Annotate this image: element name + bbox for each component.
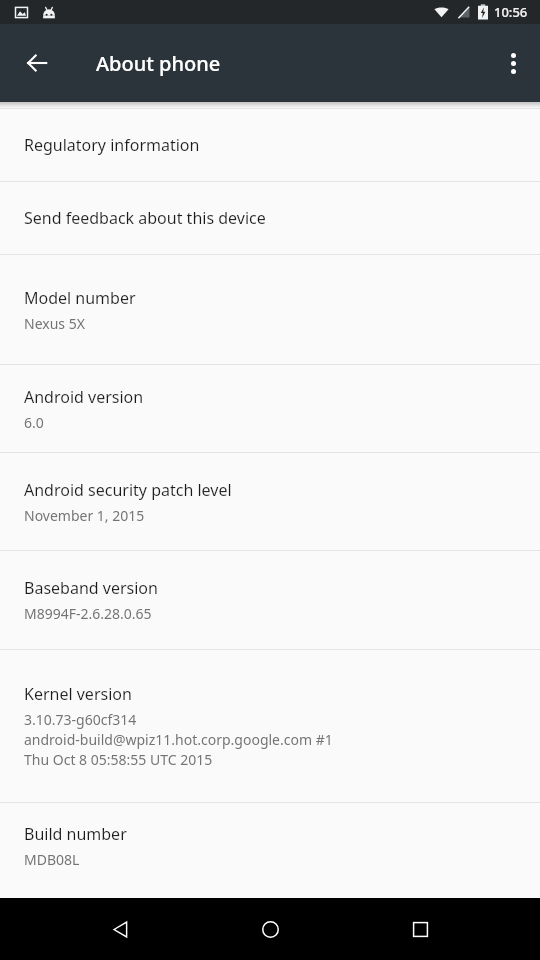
button[interactable]: Kernel version [0, 650, 540, 802]
staticText: Kernel version [24, 683, 132, 705]
button[interactable]: More options [489, 39, 537, 87]
button[interactable]: Regulatory information [0, 109, 540, 181]
staticText: android-build@wpiz11.hot.corp.google.com… [24, 730, 333, 749]
button[interactable]: Build number [0, 803, 540, 888]
staticText: Thu Oct 8 05:58:55 UTC 2015 [24, 750, 213, 769]
staticText: M8994F-2.6.28.0.65 [24, 604, 152, 623]
button[interactable]: Recent apps [390, 899, 450, 959]
button[interactable]: Home [240, 899, 300, 959]
staticText: Model number [24, 287, 136, 309]
button[interactable]: Send feedback about this device [0, 182, 540, 254]
button[interactable]: Baseband version [0, 551, 540, 649]
staticText: 3.10.73-g60cf314 [24, 710, 137, 729]
staticText: Android version [24, 386, 144, 408]
staticText: Nexus 5X [24, 314, 85, 333]
button[interactable]: Android version [0, 365, 540, 452]
staticText: About phone [96, 50, 221, 77]
staticText: 6.0 [24, 413, 44, 432]
staticText: Android security patch level [24, 479, 232, 501]
button[interactable]: Android security patch level [0, 453, 540, 550]
staticText: Build number [24, 823, 127, 845]
button[interactable]: Navigate up [13, 39, 61, 87]
staticText: November 1, 2015 [24, 506, 145, 525]
staticText: Regulatory information [24, 134, 200, 156]
staticText: Send feedback about this device [24, 207, 266, 229]
staticText: MDB08L [24, 850, 80, 869]
button[interactable]: Model number [0, 255, 540, 364]
staticText: Baseband version [24, 577, 158, 599]
staticText: 10:56 [494, 3, 528, 21]
button[interactable]: Back [90, 899, 150, 959]
